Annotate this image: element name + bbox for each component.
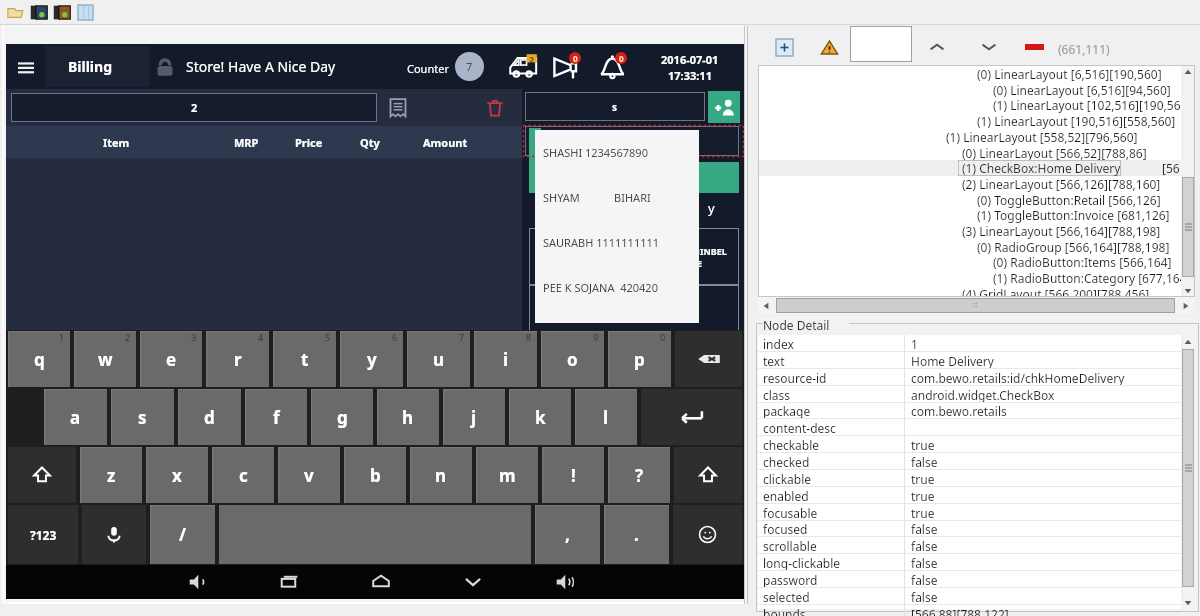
button[interactable]: /: [150, 505, 215, 564]
button[interactable]: Add customer: [708, 91, 740, 123]
button[interactable]: Volume up: [548, 565, 582, 599]
button[interactable]: Voice input: [82, 505, 146, 564]
button[interactable]: ?: [608, 447, 670, 503]
button[interactable]: s: [111, 389, 174, 445]
button[interactable]: (0) ToggleButton:Retail [566,126][673,16…: [758, 192, 1195, 208]
button[interactable]: checked: [758, 453, 1195, 470]
button[interactable]: h: [377, 389, 439, 445]
button[interactable]: (2) LinearLayout [566,126][788,160]: [758, 176, 1195, 192]
button[interactable]: !: [542, 447, 604, 503]
button[interactable]: package: [758, 402, 1195, 419]
button[interactable]: x: [146, 447, 208, 503]
button[interactable]: Emoji: [673, 505, 742, 564]
button[interactable]: Previous: [924, 34, 950, 60]
button[interactable]: g: [311, 389, 373, 445]
button[interactable]: Backspace: [675, 331, 742, 387]
button[interactable]: j: [443, 389, 505, 445]
button[interactable]: k: [509, 389, 571, 445]
button[interactable]: v: [278, 447, 340, 503]
button[interactable]: Menu: [6, 44, 45, 89]
button[interactable]: Delete: [485, 98, 505, 118]
button[interactable]: Shift: [674, 447, 742, 503]
button[interactable]: (4) GridLayout [566,200][788,456]: [758, 286, 1195, 302]
button[interactable]: index: [758, 335, 1195, 352]
button[interactable]: (0) RadioGroup [566,164][788,198]: [758, 239, 1195, 255]
button[interactable]: class: [758, 386, 1195, 403]
button[interactable]: 2: [11, 93, 377, 122]
button[interactable]: scrollable: [758, 537, 1195, 554]
button[interactable]: 6: [340, 331, 403, 387]
button[interactable]: Next: [976, 34, 1002, 60]
button[interactable]: resource-id: [758, 369, 1195, 386]
button[interactable]: m: [476, 447, 538, 503]
button[interactable]: focusable: [758, 504, 1195, 521]
button[interactable]: text: [758, 352, 1195, 369]
button[interactable]: content-desc: [758, 419, 1195, 436]
button[interactable]: SHYAM BIHARI: [535, 175, 699, 220]
button[interactable]: Volume down: [180, 565, 214, 599]
button[interactable]: Shift: [8, 447, 76, 503]
button[interactable]: [529, 162, 739, 193]
button[interactable]: d: [178, 389, 241, 445]
button[interactable]: password: [758, 571, 1195, 588]
button[interactable]: Warning: [821, 39, 838, 56]
button[interactable]: Notifications: [598, 52, 628, 82]
button[interactable]: (1) LinearLayout [190,516][558,560]: [758, 113, 1195, 129]
button[interactable]: z: [80, 447, 142, 503]
button[interactable]: (0) LinearLayout [6,516][190,560]: [758, 66, 1195, 82]
button[interactable]: Bill list: [387, 97, 409, 119]
button[interactable]: 5: [273, 331, 336, 387]
button[interactable]: (3) LinearLayout [566,164][788,198]: [758, 223, 1195, 239]
button[interactable]: 8: [474, 331, 537, 387]
button[interactable]: Device screenshot: [30, 3, 49, 22]
button[interactable]: n: [410, 447, 472, 503]
button[interactable]: Open: [6, 3, 25, 22]
button[interactable]: s: [525, 92, 705, 121]
button[interactable]: (1) CheckBox:Home Delivery: [758, 160, 1195, 176]
button[interactable]: (1) LinearLayout [558,52][796,560]: [758, 129, 1195, 145]
button[interactable]: (0) RadioButton:Items [566,164][677,198: [758, 254, 1195, 270]
button[interactable]: SHASHI 1234567890: [535, 130, 699, 175]
button[interactable]: 7: [455, 52, 484, 81]
button[interactable]: checkable: [758, 436, 1195, 453]
button[interactable]: clickable: [758, 470, 1195, 487]
button[interactable]: Enter: [641, 389, 742, 445]
button[interactable]: focused: [758, 520, 1195, 537]
button[interactable]: c: [212, 447, 274, 503]
button[interactable]: Hide keyboard: [456, 565, 490, 599]
button[interactable]: (1) ToggleButton:Invoice [681,126][788,1…: [758, 207, 1195, 223]
button[interactable]: 3: [140, 331, 202, 387]
button[interactable]: Expand all: [776, 39, 793, 56]
button[interactable]: ?123: [8, 505, 78, 564]
button[interactable]: Announcements: [552, 52, 582, 82]
button[interactable]: PEE K SOJANA 420420: [535, 265, 699, 310]
button[interactable]: Device screenshot: [53, 3, 72, 22]
button[interactable]: 7: [407, 331, 470, 387]
button[interactable]: (1) RadioButton:Category [677,164][788,: [758, 270, 1195, 286]
button[interactable]: enabled: [758, 487, 1195, 504]
button[interactable]: l: [575, 389, 637, 445]
button[interactable]: SAURABH 1111111111: [535, 220, 699, 265]
button[interactable]: (0) LinearLayout [6,516][94,560]: [758, 82, 1195, 98]
button[interactable]: b: [344, 447, 406, 503]
button[interactable]: Recents: [272, 565, 306, 599]
button[interactable]: Delivery: [508, 51, 540, 83]
button[interactable]: 4: [206, 331, 269, 387]
button[interactable]: selected: [758, 588, 1195, 605]
button[interactable]: Home: [364, 565, 398, 599]
button[interactable]: ,: [535, 505, 600, 564]
button[interactable]: 2: [74, 331, 136, 387]
button[interactable]: (0) LinearLayout [566,52][788,86]: [758, 145, 1195, 161]
button[interactable]: .: [604, 505, 669, 564]
button[interactable]: 1: [8, 331, 70, 387]
button[interactable]: long-clickable: [758, 554, 1195, 571]
button[interactable]: [850, 26, 912, 62]
button[interactable]: Save: [77, 4, 94, 21]
button[interactable]: 9: [541, 331, 604, 387]
button[interactable]: bounds: [758, 605, 1195, 616]
button[interactable]: f: [245, 389, 307, 445]
button[interactable]: (1) LinearLayout [102,516][190,560]: [758, 97, 1195, 113]
button[interactable]: a: [44, 389, 107, 445]
